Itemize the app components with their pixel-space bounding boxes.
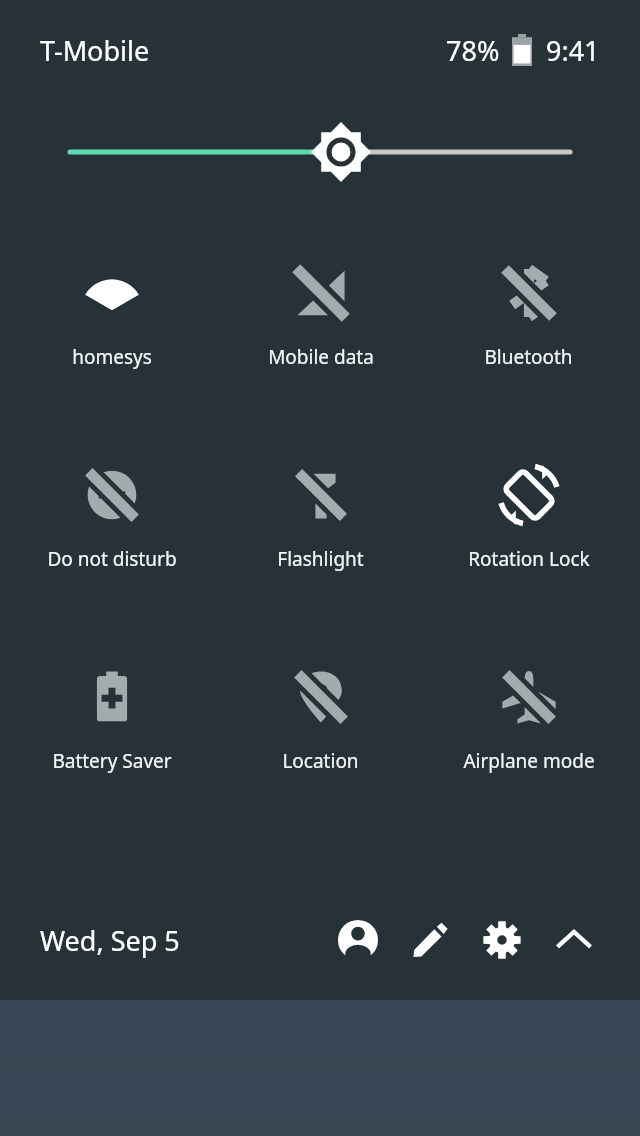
- button[interactable]: Settings: [466, 904, 538, 976]
- staticText: Battery Saver: [52, 748, 172, 774]
- staticText: Wed, Sep 5: [40, 922, 180, 959]
- staticText: 9:41: [546, 32, 600, 69]
- staticText: Bluetooth: [484, 344, 573, 370]
- button[interactable]: Do not disturb: [28, 458, 195, 572]
- staticText: homesys: [72, 344, 152, 370]
- button[interactable]: Edit tiles: [394, 904, 466, 976]
- button[interactable]: Location: [237, 660, 404, 774]
- staticText: Airplane mode: [463, 748, 595, 774]
- button[interactable]: Mobile data: [237, 256, 404, 370]
- staticText: Mobile data: [268, 344, 374, 370]
- button[interactable]: Bluetooth: [445, 256, 612, 370]
- button[interactable]: User account: [322, 904, 394, 976]
- button[interactable]: Rotation Lock: [445, 458, 612, 572]
- staticText: Flashlight: [277, 546, 364, 572]
- staticText: 78%: [446, 32, 500, 69]
- button[interactable]: Collapse: [538, 904, 610, 976]
- button[interactable]: Airplane mode: [445, 660, 612, 774]
- staticText: Do not disturb: [47, 546, 177, 572]
- staticText: Rotation Lock: [468, 546, 590, 572]
- button[interactable]: Battery Saver: [28, 660, 195, 774]
- staticText: Location: [282, 748, 359, 774]
- button[interactable]: [0, 122, 640, 182]
- button[interactable]: homesys: [28, 256, 195, 370]
- button[interactable]: Flashlight: [237, 458, 404, 572]
- staticText: T-Mobile: [40, 32, 150, 69]
